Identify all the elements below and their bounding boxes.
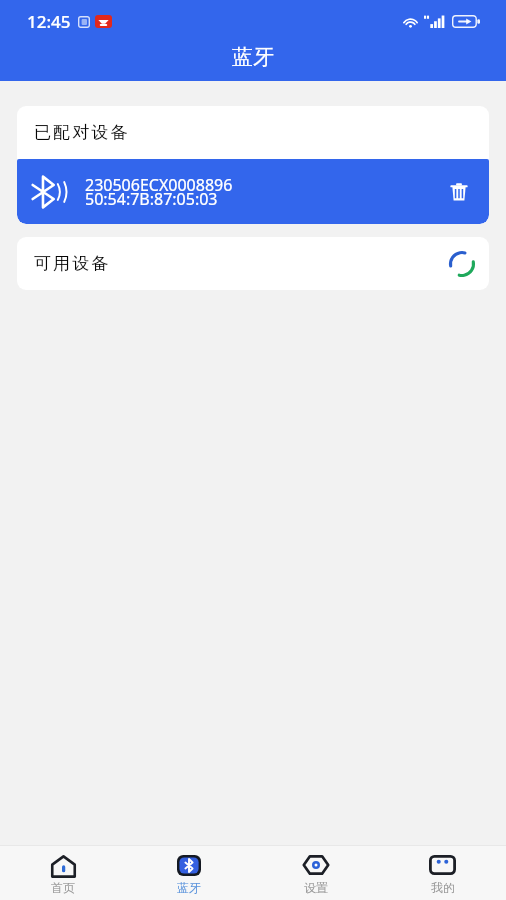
button[interactable]: 可用设备 bbox=[17, 237, 489, 290]
button[interactable]: 设置 bbox=[252, 846, 379, 900]
staticText: 我的 bbox=[431, 880, 455, 895]
button[interactable]: 首页 bbox=[0, 846, 126, 900]
button[interactable]: 已配对设备 bbox=[17, 106, 489, 159]
staticText: 已配对设备 bbox=[34, 122, 130, 143]
staticText: 50:54:7B:87:05:03 bbox=[85, 188, 218, 210]
staticText: 蓝牙 bbox=[177, 880, 201, 895]
button[interactable]: Delete bbox=[442, 175, 476, 209]
button[interactable]: 蓝牙 bbox=[126, 846, 252, 900]
staticText: 230506ECX0008896 bbox=[85, 174, 233, 196]
button[interactable]: 我的 bbox=[379, 846, 506, 900]
staticText: 设置 bbox=[304, 880, 328, 895]
staticText: 12:45 bbox=[27, 10, 71, 33]
button[interactable]: 230506ECX0008896 bbox=[17, 159, 489, 224]
staticText: 首页 bbox=[51, 880, 75, 895]
staticText: 可用设备 bbox=[34, 253, 111, 274]
staticText: 蓝牙 bbox=[232, 44, 274, 70]
